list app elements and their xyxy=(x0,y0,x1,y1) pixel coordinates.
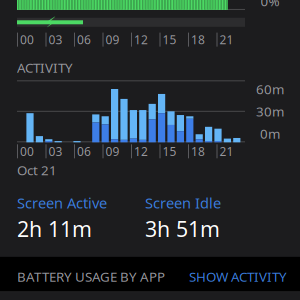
staticText: Screen Active xyxy=(17,193,107,212)
staticText: Screen Idle xyxy=(145,193,221,212)
staticText: 21 xyxy=(219,143,233,159)
staticText: 00 xyxy=(20,32,34,47)
staticText: 12 xyxy=(134,143,148,159)
staticText: 21 xyxy=(219,32,233,47)
staticText: 0% xyxy=(260,0,279,10)
staticText: SHOW ACTIVITY xyxy=(189,268,287,285)
staticText: 09 xyxy=(105,143,119,159)
staticText: 18 xyxy=(191,32,205,47)
staticText: ⚡︎ xyxy=(46,14,56,31)
staticText: ACTIVITY xyxy=(17,59,73,76)
staticText: 03 xyxy=(48,143,62,159)
staticText: 30m xyxy=(256,102,284,120)
staticText: 09 xyxy=(105,32,119,47)
staticText: 15 xyxy=(162,143,176,159)
staticText: 3h 51m xyxy=(145,214,220,243)
staticText: 15 xyxy=(162,32,176,47)
staticText: 0m xyxy=(260,125,280,142)
staticText: 60m xyxy=(256,80,284,98)
staticText: 06 xyxy=(77,32,91,47)
staticText: 06 xyxy=(77,143,91,159)
staticText: 03 xyxy=(48,32,62,47)
staticText: 2h 11m xyxy=(17,214,92,243)
button[interactable]: SHOW ACTIVITY xyxy=(189,268,287,285)
staticText: 00 xyxy=(20,143,34,159)
staticText: 12 xyxy=(134,32,148,47)
staticText: 18 xyxy=(191,143,205,159)
staticText: Oct 21 xyxy=(17,161,57,179)
staticText: BATTERY USAGE BY APP xyxy=(17,268,165,285)
